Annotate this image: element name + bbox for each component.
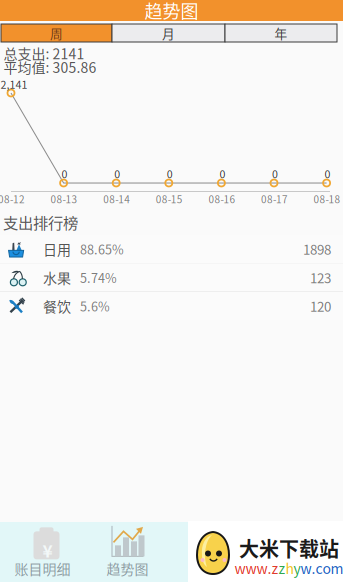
staticText: 08-13 xyxy=(51,192,78,206)
staticText: 大米下载站 xyxy=(239,533,339,562)
staticText: 0 xyxy=(325,166,331,181)
staticText: 趋势图 xyxy=(106,558,148,579)
button[interactable]: 月 xyxy=(112,24,225,42)
button[interactable]: 餐饮 xyxy=(0,292,343,320)
staticText: 08-17 xyxy=(261,192,288,206)
staticText: 0 xyxy=(272,166,278,181)
button[interactable]: 年 xyxy=(225,24,337,42)
button[interactable]: 周 xyxy=(1,24,112,42)
staticText: 平均值: 305.86 xyxy=(3,57,96,77)
staticText: www. xyxy=(234,558,271,578)
staticText: 5.6% xyxy=(80,297,110,315)
staticText: 0 xyxy=(114,166,120,181)
staticText: ¥ xyxy=(42,537,52,562)
staticText: 5.74% xyxy=(80,268,117,287)
staticText: 08-12 xyxy=(0,192,25,206)
staticText: 08-16 xyxy=(208,192,235,206)
button[interactable]: 趋势图 xyxy=(85,522,170,582)
staticText: 总支出: 2141 xyxy=(3,43,84,63)
staticText: y xyxy=(293,558,300,578)
staticText: 0 xyxy=(167,166,173,181)
button[interactable]: 水果 xyxy=(0,263,343,291)
staticText: 1898 xyxy=(303,239,331,259)
staticText: z xyxy=(278,558,285,578)
staticText: z xyxy=(271,558,278,578)
button[interactable]: 日用 xyxy=(0,235,343,263)
staticText: 123 xyxy=(310,268,331,287)
staticText: 周 xyxy=(50,24,63,42)
staticText: 88.65% xyxy=(80,240,124,258)
staticText: 08-18 xyxy=(314,192,341,206)
staticText: 08-14 xyxy=(103,192,130,206)
staticText: 年 xyxy=(274,24,287,42)
staticText: 支出排行榜 xyxy=(3,211,78,233)
staticText: 120 xyxy=(310,296,331,316)
staticText: 08-15 xyxy=(156,192,183,206)
staticText: w.com xyxy=(300,558,343,578)
staticText: 水果 xyxy=(43,267,71,288)
staticText: 0 xyxy=(62,166,68,181)
staticText: 2,141 xyxy=(0,76,27,92)
button[interactable]: ¥ xyxy=(0,522,85,582)
staticText: 趋势图 xyxy=(144,0,198,24)
staticText: 月 xyxy=(162,24,175,42)
staticText: 账目明细 xyxy=(14,558,70,579)
staticText: 日用 xyxy=(43,239,71,259)
staticText: 餐饮 xyxy=(43,296,71,316)
staticText: h xyxy=(285,558,293,578)
staticText: 0 xyxy=(219,166,225,181)
